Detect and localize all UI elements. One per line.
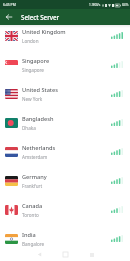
staticText: Netherlands xyxy=(22,144,56,152)
staticText: Select Server xyxy=(21,13,60,21)
staticText: United Kingdom xyxy=(22,28,66,36)
staticText: London xyxy=(22,38,39,44)
staticText: Frankfurt xyxy=(22,183,43,189)
staticText: Toronto xyxy=(22,212,39,218)
button[interactable]: United States xyxy=(0,79,130,108)
button[interactable]: Canada xyxy=(0,195,130,224)
staticText: Canada xyxy=(22,202,43,210)
staticText: Dhaka xyxy=(22,125,36,131)
staticText: 1.9KB/s xyxy=(89,3,101,7)
button[interactable]: Recent apps xyxy=(86,249,97,260)
button[interactable]: Back xyxy=(34,249,45,260)
staticText: Singapore xyxy=(22,67,44,73)
button[interactable]: Singapore xyxy=(0,50,130,79)
button[interactable]: Netherlands xyxy=(0,137,130,166)
staticText: United States xyxy=(22,86,58,94)
staticText: Bangladesh xyxy=(22,115,54,123)
staticText: Singapore xyxy=(22,57,50,65)
button[interactable]: United Kingdom xyxy=(0,21,130,50)
staticText: 6:45 PM xyxy=(3,2,16,7)
staticText: India xyxy=(22,231,36,239)
button[interactable]: Germany xyxy=(0,166,130,195)
staticText: Germany xyxy=(22,173,47,181)
button[interactable]: India xyxy=(0,224,130,253)
button[interactable]: Back xyxy=(2,10,16,24)
button[interactable]: Home xyxy=(60,249,71,260)
staticText: Bangalore xyxy=(22,241,45,247)
staticText: New York xyxy=(22,96,43,102)
staticText: Amsterdam xyxy=(22,154,48,160)
staticText: 84% xyxy=(122,3,129,7)
button[interactable]: Bangladesh xyxy=(0,108,130,137)
